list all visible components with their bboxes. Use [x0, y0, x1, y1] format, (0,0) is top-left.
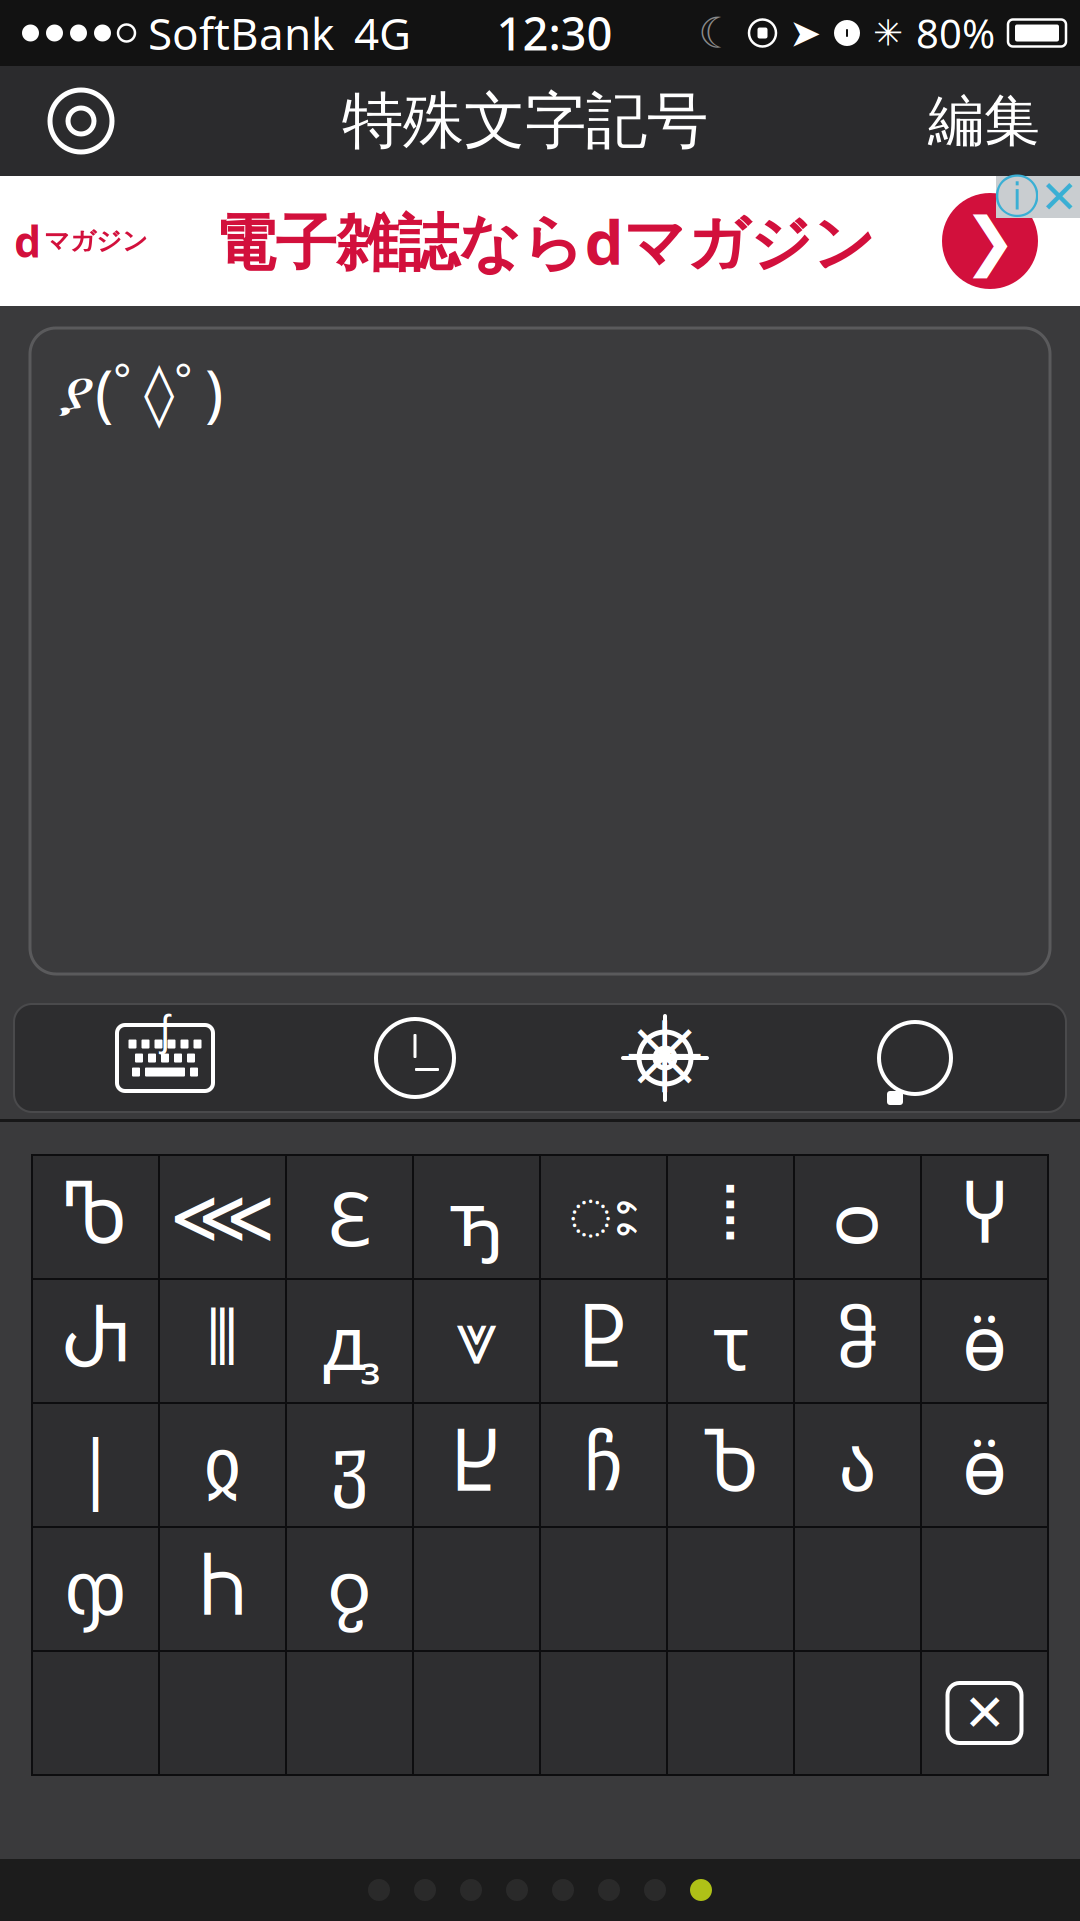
staticText: ꚍ	[712, 1291, 748, 1391]
button[interactable]: ⦀	[160, 1280, 285, 1402]
staticText: ⦙	[722, 1181, 739, 1253]
staticText: ჲ	[203, 1423, 241, 1507]
button[interactable]: ჳ	[287, 1404, 412, 1526]
staticText: SoftBank	[148, 4, 334, 62]
staticText: ʃ	[160, 1002, 170, 1055]
staticText: ӫ	[962, 1291, 1007, 1391]
button[interactable]: Ⴊ	[33, 1156, 158, 1278]
staticText: ჳ	[330, 1423, 368, 1507]
staticText: |	[75, 1415, 116, 1515]
staticText: ✳	[623, 1002, 706, 1114]
button[interactable]: ꚉ	[287, 1280, 412, 1402]
button[interactable]: ꚋ	[414, 1156, 539, 1278]
button[interactable]: Ad information	[996, 176, 1038, 218]
button[interactable]: ჲ	[160, 1404, 285, 1526]
staticText: Ⴤ	[962, 1175, 1006, 1259]
staticText: 特殊文字記号	[342, 83, 708, 159]
staticText: 4G	[354, 4, 411, 62]
button[interactable]: Ⴒ	[541, 1280, 666, 1402]
button[interactable]: ⩔	[414, 1280, 539, 1402]
staticText: ✳	[873, 13, 903, 53]
staticText: ӫ	[962, 1415, 1007, 1515]
staticText: 電子雑誌ならdマガジン	[214, 200, 875, 282]
button[interactable]: Ⴐ	[33, 1280, 158, 1402]
staticText: Ⴐ	[61, 1299, 129, 1383]
button[interactable]: Delete	[922, 1652, 1047, 1774]
staticText: ა	[838, 1423, 876, 1507]
staticText: 12:30	[496, 3, 612, 63]
staticText: マガジン	[44, 225, 148, 256]
staticText: ჹ	[328, 1547, 371, 1631]
button[interactable]: ႜ	[541, 1156, 666, 1278]
staticText: ⦀	[206, 1305, 239, 1377]
staticText: ⋘	[169, 1175, 275, 1259]
button[interactable]: Recents	[290, 1004, 540, 1112]
staticText: ⓘ	[994, 169, 1039, 225]
button[interactable]: ⋘	[160, 1156, 285, 1278]
button[interactable]: ჵ	[795, 1280, 920, 1402]
staticText: d	[14, 213, 41, 269]
button[interactable]: Settings	[26, 66, 136, 176]
button[interactable]: ӫ	[922, 1404, 1047, 1526]
button[interactable]: ა	[795, 1404, 920, 1526]
button[interactable]: ꚍ	[668, 1280, 793, 1402]
staticText: ႜ	[567, 1163, 639, 1271]
button[interactable]: Ⴤ	[922, 1156, 1047, 1278]
staticText: ☾	[698, 9, 736, 57]
button[interactable]: Messages	[790, 1004, 1040, 1112]
staticText: Ⴒ	[580, 1299, 626, 1383]
button[interactable]: ჶ	[33, 1528, 158, 1650]
staticText: ✕	[1040, 171, 1078, 223]
staticText: ჵ	[837, 1299, 878, 1383]
button[interactable]: ჩ	[541, 1404, 666, 1526]
staticText: ꚋ	[449, 1167, 504, 1267]
staticText: Ⴞ	[453, 1423, 500, 1507]
button[interactable]: |	[33, 1404, 158, 1526]
button[interactable]: Categories	[540, 1004, 790, 1112]
staticText: ❯	[963, 205, 1017, 277]
staticText: Ⴆ	[702, 1423, 758, 1507]
staticText: ያ(ﾟ◊ﾟ)	[58, 350, 223, 431]
staticText: 編集	[928, 87, 1040, 155]
staticText: ᴑ	[835, 1167, 880, 1267]
button[interactable]: Ⴙ	[160, 1528, 285, 1650]
button[interactable]: ᴑ	[795, 1156, 920, 1278]
staticText: Ɛ	[327, 1167, 371, 1267]
button[interactable]: ӫ	[922, 1280, 1047, 1402]
button[interactable]: Close ad	[1038, 176, 1080, 218]
button[interactable]: Ⴞ	[414, 1404, 539, 1526]
button[interactable]: 編集	[914, 66, 1054, 176]
staticText: ჶ	[64, 1547, 126, 1631]
staticText: ꚉ	[322, 1291, 376, 1391]
staticText: Ⴙ	[199, 1547, 245, 1631]
button[interactable]: Ɛ	[287, 1156, 412, 1278]
staticText: ➤	[789, 11, 821, 55]
staticText: ⩔	[455, 1305, 497, 1377]
staticText: ✕	[963, 1684, 1005, 1742]
button[interactable]: Ⴆ	[668, 1404, 793, 1526]
staticText: ჩ	[584, 1423, 623, 1507]
button[interactable]: ⦙	[668, 1156, 793, 1278]
staticText: 80%	[916, 6, 995, 59]
staticText: Ⴊ	[64, 1175, 127, 1259]
button[interactable]: ჹ	[287, 1528, 412, 1650]
button[interactable]: Keyboard	[40, 1004, 290, 1112]
